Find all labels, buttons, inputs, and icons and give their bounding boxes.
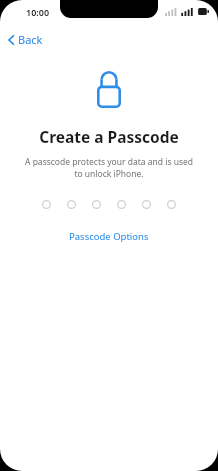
staticText: 10:00 bbox=[26, 6, 50, 18]
staticText: Passcode Options bbox=[69, 230, 149, 243]
button[interactable]: Back bbox=[0, 29, 53, 50]
staticText: Back bbox=[18, 32, 43, 47]
button[interactable]: Passcode Options bbox=[59, 226, 159, 247]
staticText: A passcode protects your data and is use… bbox=[12, 156, 206, 180]
staticText: Create a Passcode bbox=[39, 126, 179, 147]
